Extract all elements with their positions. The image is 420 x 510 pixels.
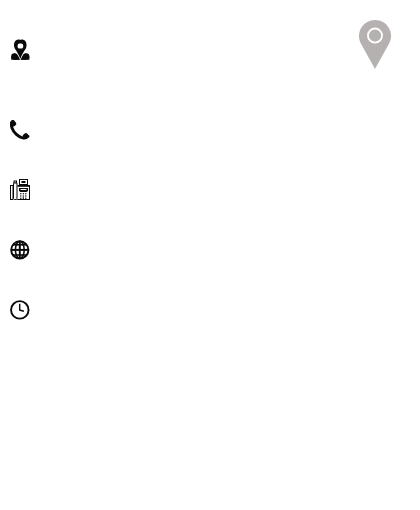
button[interactable]: Website: [0, 220, 420, 280]
button[interactable]: Open map location: [359, 20, 391, 69]
button[interactable]: Phone number: [0, 100, 420, 160]
button[interactable]: Address: [0, 0, 420, 100]
button[interactable]: Fax number: [0, 160, 420, 220]
button[interactable]: Opening hours: [0, 280, 420, 340]
